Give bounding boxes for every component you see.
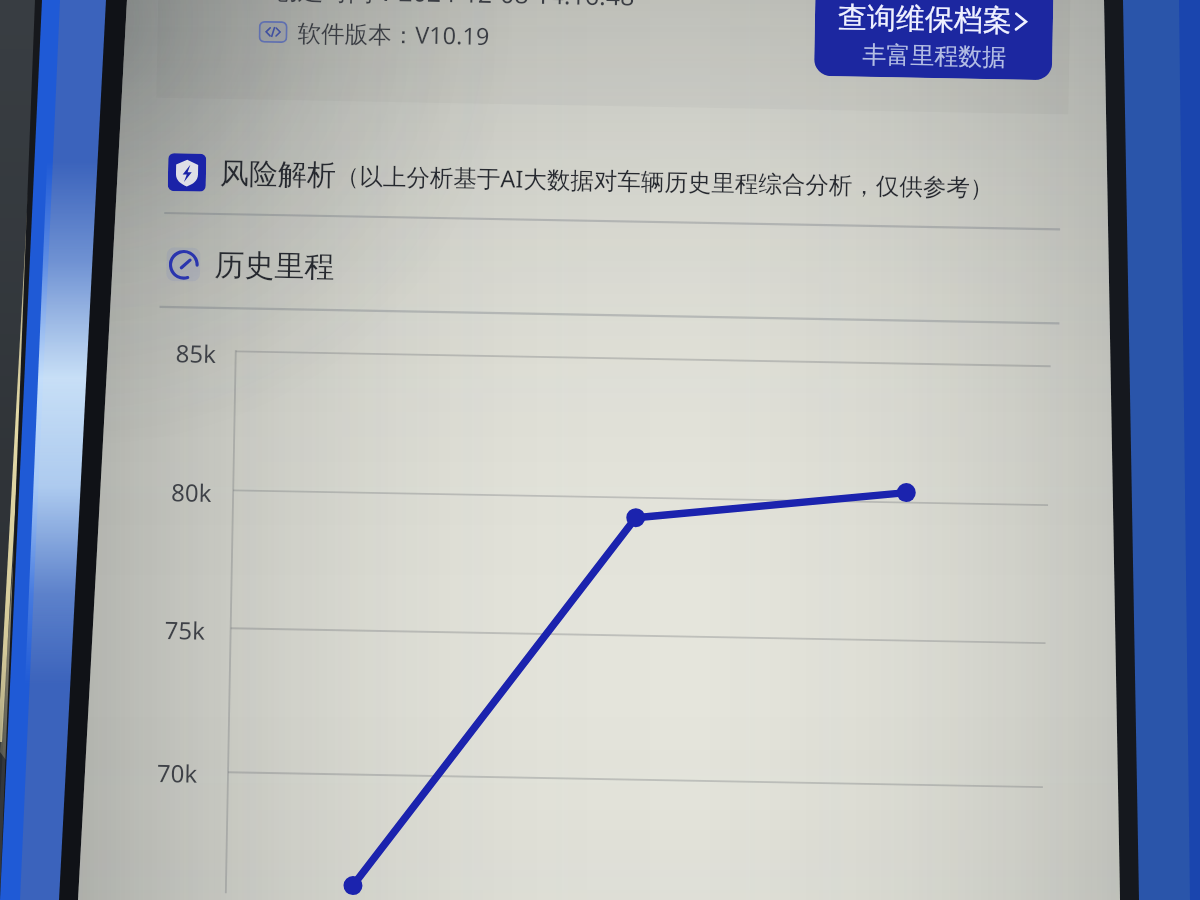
staticText: 创建时间：2024-12-08 14:16:48 (273, 0, 636, 13)
staticText: 丰富里程数据 (862, 40, 1006, 72)
staticText: 85k (175, 336, 217, 370)
button[interactable]: 风险解析 (168, 153, 994, 206)
button[interactable]: 历史里程 (166, 245, 335, 286)
button[interactable]: 查询维保档案 (814, 0, 1054, 80)
staticText: 软件版本：V10.19 (297, 16, 490, 52)
staticText: 70k (157, 756, 198, 790)
staticText: 80k (171, 475, 212, 509)
staticText: 风险解析 (220, 155, 336, 194)
staticText: （以上分析基于AI大数据对车辆历史里程综合分析，仅供参考） (336, 159, 994, 203)
staticText: 75k (164, 613, 206, 647)
staticText: 查询维保档案 (838, 0, 1012, 39)
staticText: 历史里程 (214, 246, 335, 286)
